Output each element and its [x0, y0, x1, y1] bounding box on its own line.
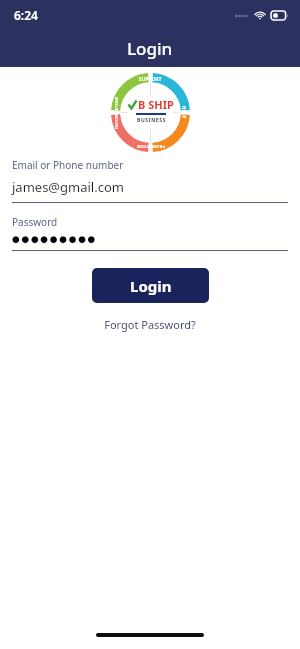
staticText: Forgot Password?: [104, 317, 196, 332]
button[interactable]: Forgot Password?: [98, 315, 202, 334]
staticText: B SHIP: [138, 97, 174, 112]
staticText: Email or Phone number: [12, 158, 124, 172]
staticText: INFORMATION: [114, 96, 119, 129]
staticText: ●●●●●●●●●: [12, 234, 98, 244]
staticText: Login: [130, 276, 172, 296]
staticText: SUPPORT: [139, 76, 162, 82]
staticText: james@gmail.com: [12, 178, 124, 196]
staticText: Password: [12, 215, 58, 229]
staticText: Login: [127, 37, 173, 60]
staticText: 6:24: [14, 7, 38, 23]
staticText: HELP: [181, 106, 187, 119]
staticText: PROMOTION: [136, 144, 165, 149]
button[interactable]: Login: [92, 268, 209, 303]
staticText: BUSINESS: [137, 117, 166, 124]
